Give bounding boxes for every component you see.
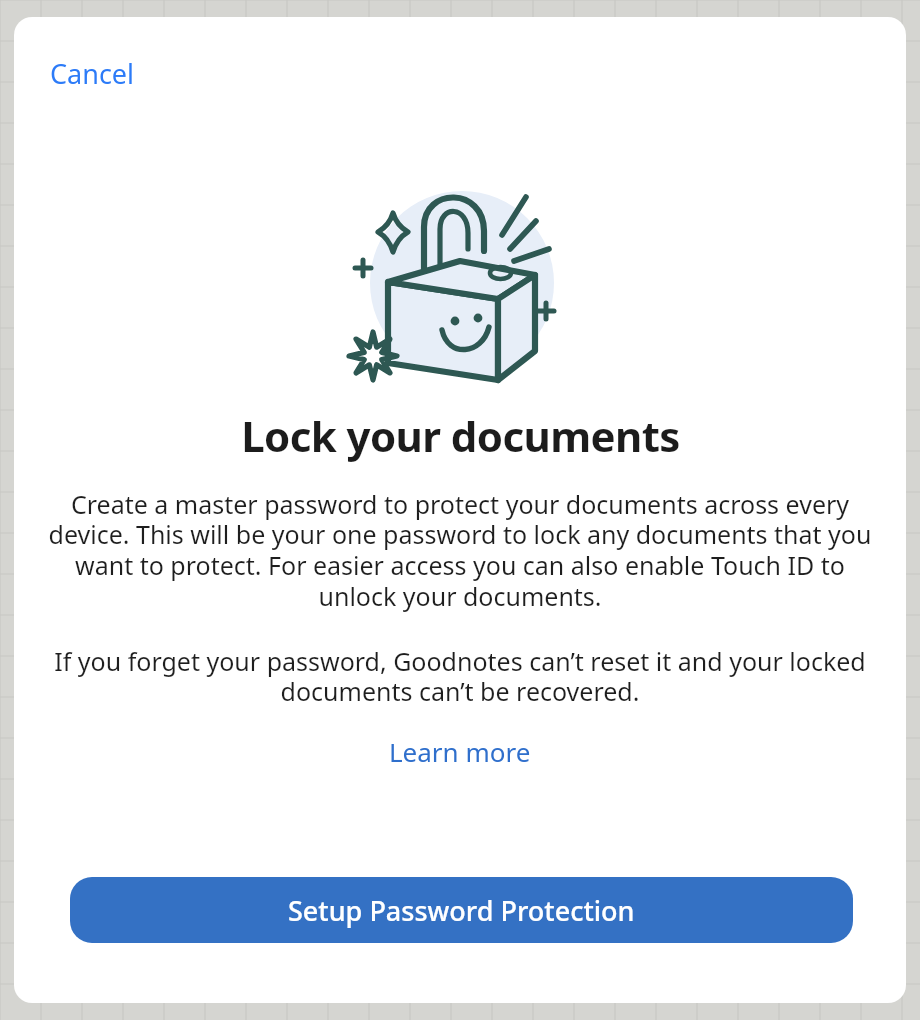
staticText: Learn more [389, 734, 531, 769]
button[interactable]: Learn more [381, 730, 539, 773]
staticText: Cancel [50, 55, 135, 92]
button[interactable]: Setup Password Protection [70, 877, 853, 943]
button[interactable]: Cancel [44, 51, 141, 96]
staticText: Create a master password to protect your… [35, 487, 885, 614]
staticText: Lock your documents [241, 407, 680, 464]
staticText: Setup Password Protection [288, 892, 635, 929]
staticText: If you forget your password, Goodnotes c… [50, 644, 870, 709]
